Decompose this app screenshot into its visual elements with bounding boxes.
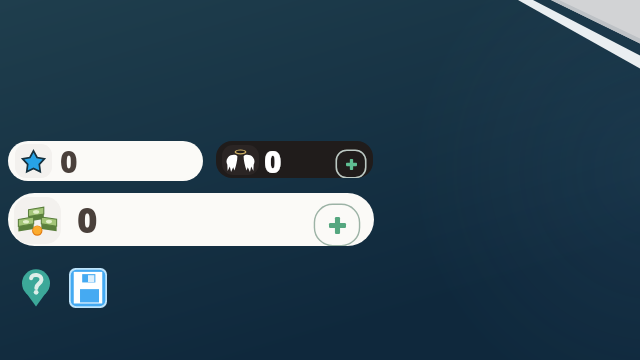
staticText: 0 <box>264 141 282 178</box>
staticText: 0 <box>60 141 78 181</box>
button[interactable]: Save <box>69 268 107 308</box>
button[interactable]: Help <box>22 269 50 307</box>
button[interactable]: Add wings <box>335 149 367 178</box>
button[interactable]: 0 <box>8 141 203 181</box>
staticText: 0 <box>77 196 98 244</box>
button[interactable]: 0 <box>216 141 373 178</box>
button[interactable]: 0 <box>8 193 374 246</box>
button[interactable]: Add money <box>313 203 361 246</box>
